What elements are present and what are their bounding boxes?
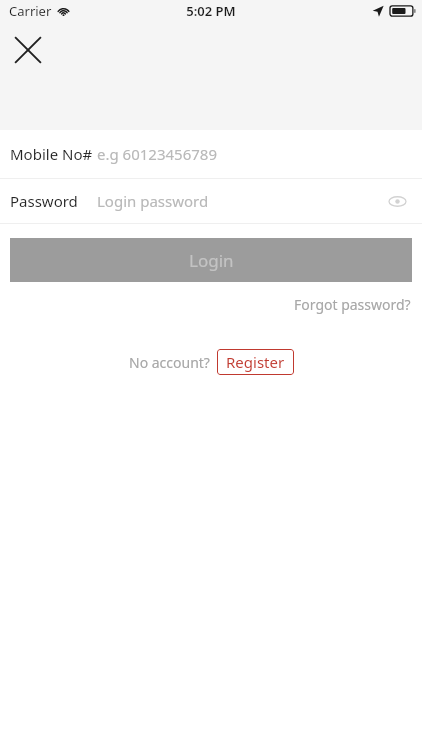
- button[interactable]: Register: [217, 349, 294, 375]
- staticText: e.g 60123456789: [97, 144, 412, 164]
- staticText: Register: [226, 352, 285, 372]
- button[interactable]: Mobile No#: [0, 130, 422, 178]
- button[interactable]: Forgot password?: [283, 290, 422, 319]
- button[interactable]: Login: [10, 238, 412, 282]
- staticText: Forgot password?: [294, 295, 411, 314]
- staticText: Password: [10, 191, 97, 211]
- button[interactable]: Password: [0, 179, 422, 223]
- button[interactable]: Close: [6, 28, 50, 72]
- staticText: Mobile No#: [10, 144, 97, 164]
- staticText: Login password: [97, 191, 382, 211]
- staticText: Login: [189, 249, 234, 272]
- button[interactable]: Show password: [382, 186, 412, 216]
- staticText: Carrier: [9, 2, 52, 20]
- staticText: No account?: [129, 353, 210, 372]
- staticText: 5:02 PM: [186, 2, 236, 20]
